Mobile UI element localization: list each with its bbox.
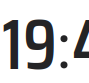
staticText: 45: [72, 0, 89, 83]
staticText: 19: [2, 0, 57, 83]
